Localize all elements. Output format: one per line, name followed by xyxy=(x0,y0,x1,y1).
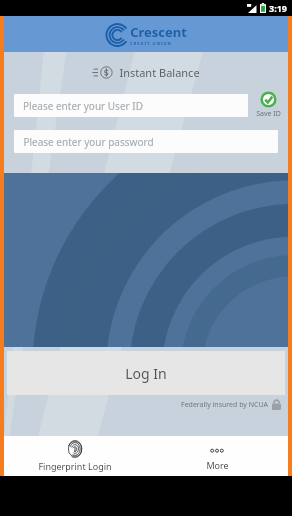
staticText: Crescent xyxy=(130,23,187,41)
button[interactable]: Fingerprint Login xyxy=(4,436,146,476)
button[interactable]: Instant Balance xyxy=(4,61,288,84)
staticText: Please enter your User ID xyxy=(23,99,143,113)
button[interactable]: More xyxy=(146,436,288,476)
staticText: Fingerprint Login xyxy=(38,460,112,472)
staticText: Please enter your password xyxy=(23,135,154,149)
staticText: Save ID xyxy=(256,109,281,119)
staticText: Instant Balance xyxy=(119,65,200,80)
staticText: 3:19 xyxy=(269,2,287,14)
button[interactable]: Please enter your password xyxy=(14,130,278,153)
staticText: More xyxy=(206,459,229,471)
staticText: C R E D I T U N I O N xyxy=(130,41,171,46)
staticText: Log In xyxy=(125,364,167,383)
button[interactable]: Please enter your User ID xyxy=(14,94,248,117)
button[interactable]: Log In xyxy=(7,351,285,395)
button[interactable]: Save ID xyxy=(255,91,282,119)
staticText: Federally insured by NCUA xyxy=(181,400,268,410)
